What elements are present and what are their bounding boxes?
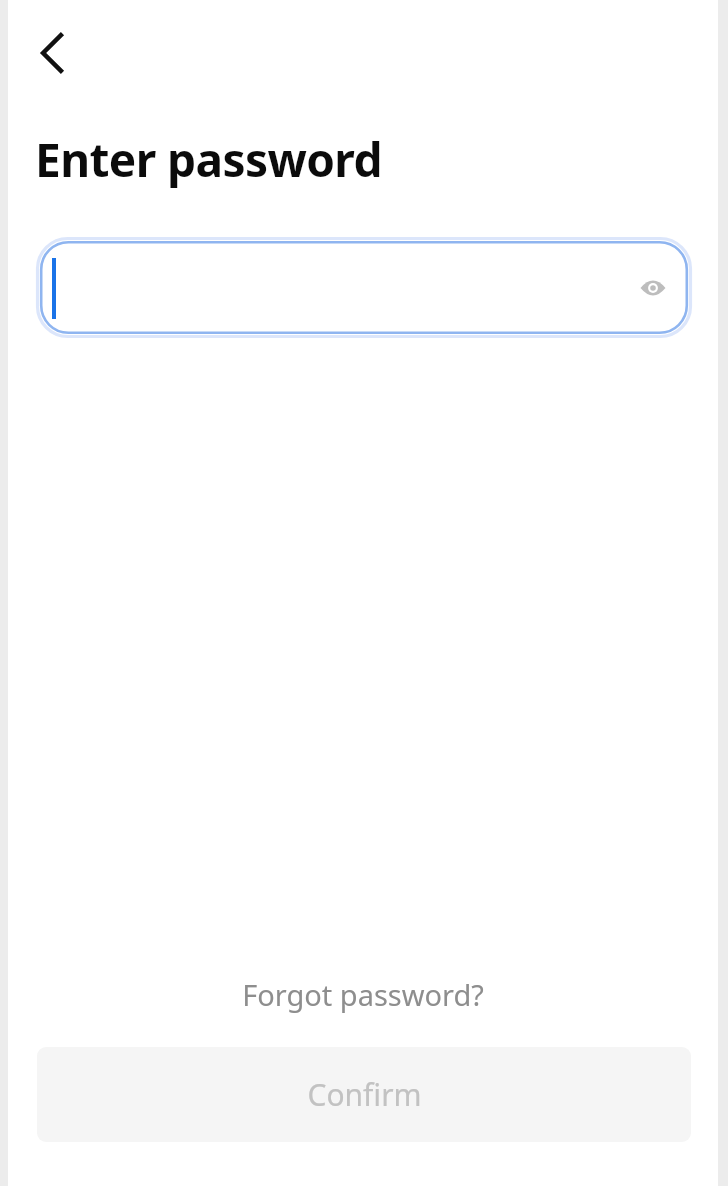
button[interactable]: Forgot password? (8, 972, 718, 1016)
staticText: Enter password (35, 128, 382, 191)
button[interactable]: Show password (624, 259, 682, 317)
staticText: Forgot password? (242, 975, 484, 1014)
staticText: Confirm (307, 1074, 422, 1115)
button[interactable]: Show password (36, 237, 692, 338)
button[interactable]: Back (18, 20, 84, 86)
button[interactable]: Confirm (37, 1047, 691, 1142)
